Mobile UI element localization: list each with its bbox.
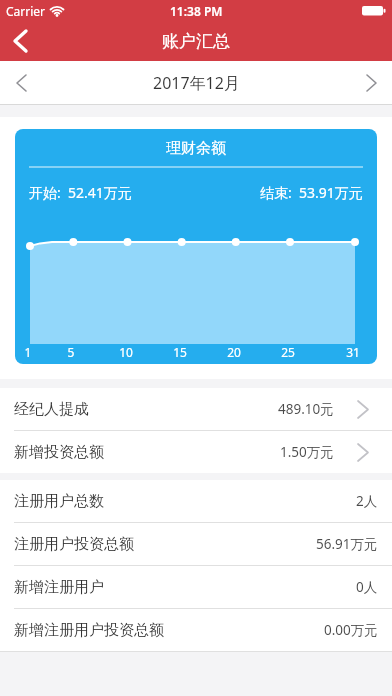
staticText: 新增注册用户投资总额: [14, 621, 164, 640]
button[interactable]: 经纪人提成: [0, 388, 392, 430]
staticText: 11:38 PM: [170, 3, 223, 19]
staticText: 2017年12月: [153, 72, 240, 94]
staticText: 56.91万元: [316, 535, 378, 553]
staticText: 2人: [356, 492, 378, 510]
staticText: 注册用户总数: [14, 492, 104, 511]
button[interactable]: 新增注册用户: [0, 566, 392, 608]
staticText: 31: [338, 344, 368, 360]
button[interactable]: [8, 68, 34, 98]
staticText: Carrier: [6, 3, 46, 19]
staticText: 理财余额: [166, 139, 226, 158]
button[interactable]: 新增投资总额: [0, 431, 392, 473]
staticText: 注册用户投资总额: [14, 535, 134, 554]
staticText: 0.00万元: [324, 621, 378, 639]
staticText: 489.10元: [278, 400, 334, 418]
staticText: 0人: [356, 578, 378, 596]
staticText: 结束: 53.91万元: [260, 183, 363, 202]
staticText: 5: [56, 344, 86, 360]
staticText: 1: [15, 344, 43, 360]
staticText: 1.50万元: [280, 443, 334, 461]
button[interactable]: [6, 25, 34, 57]
staticText: 15: [165, 344, 195, 360]
staticText: 经纪人提成: [14, 400, 89, 419]
button[interactable]: 注册用户投资总额: [0, 523, 392, 565]
button[interactable]: 新增注册用户投资总额: [0, 609, 392, 651]
staticText: 新增投资总额: [14, 443, 104, 462]
staticText: 10: [111, 344, 141, 360]
staticText: 25: [273, 344, 303, 360]
staticText: 账户汇总: [162, 31, 230, 52]
staticText: 新增注册用户: [14, 578, 104, 597]
staticText: 20: [219, 344, 249, 360]
button[interactable]: [358, 68, 384, 98]
button[interactable]: 理财余额: [15, 129, 377, 364]
staticText: 开始: 52.41万元: [29, 183, 132, 202]
button[interactable]: 注册用户总数: [0, 480, 392, 522]
